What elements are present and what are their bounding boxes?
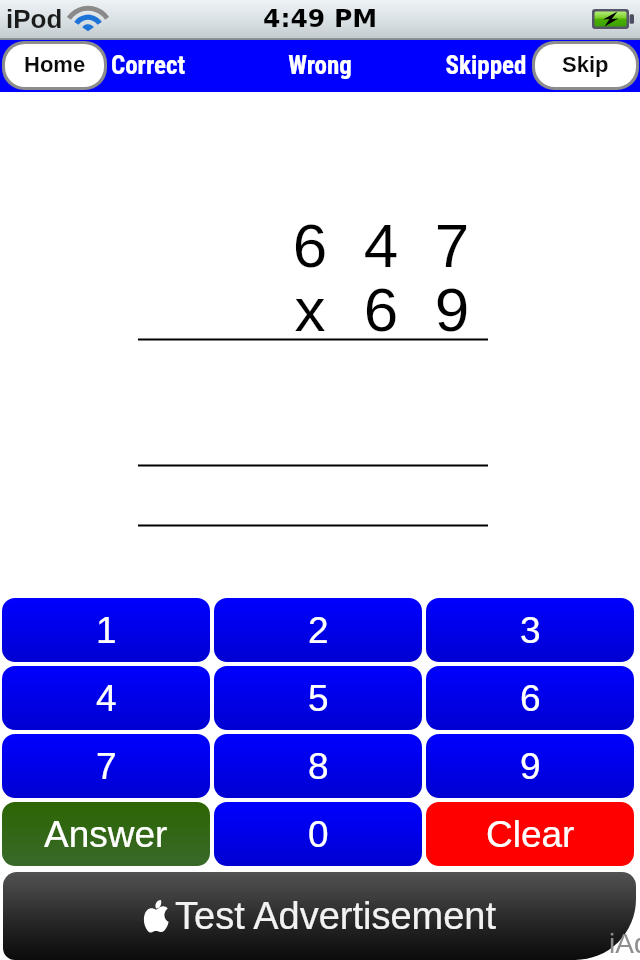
- button[interactable]: 6: [426, 666, 634, 730]
- staticText: 6: [520, 678, 541, 719]
- button[interactable]: 8: [214, 734, 422, 798]
- button[interactable]: 3: [426, 598, 634, 662]
- button[interactable]: Home: [5, 44, 104, 87]
- staticText: 7: [96, 746, 117, 787]
- staticText: 1: [96, 610, 117, 651]
- staticText: 4: [351, 211, 411, 280]
- staticText: Answer: [44, 814, 168, 855]
- staticText: 2: [308, 610, 329, 651]
- staticText: 4:49 PM: [263, 4, 378, 33]
- staticText: iPod: [6, 4, 63, 33]
- staticText: 6: [351, 275, 411, 344]
- button[interactable]: Test Advertisement: [3, 872, 636, 960]
- staticText: 0: [308, 814, 329, 855]
- staticText: Skip: [562, 52, 609, 77]
- staticText: 4: [96, 678, 117, 719]
- staticText: Skipped: [416, 51, 556, 80]
- button[interactable]: Clear: [426, 802, 634, 866]
- staticText: Test Advertisement: [175, 895, 497, 937]
- button[interactable]: 4: [2, 666, 210, 730]
- staticText: 3: [520, 610, 541, 651]
- staticText: Clear: [486, 814, 575, 855]
- staticText: 9: [520, 746, 541, 787]
- staticText: 6: [280, 211, 340, 280]
- button[interactable]: 0: [214, 802, 422, 866]
- staticText: 7: [422, 211, 482, 280]
- staticText: Correct: [78, 51, 218, 80]
- staticText: 8: [308, 746, 329, 787]
- staticText: 9: [422, 275, 482, 344]
- staticText: x: [280, 275, 340, 344]
- button[interactable]: 9: [426, 734, 634, 798]
- staticText: 5: [308, 678, 329, 719]
- button[interactable]: 7: [2, 734, 210, 798]
- staticText: Home: [24, 52, 86, 77]
- button[interactable]: 1: [2, 598, 210, 662]
- button[interactable]: 5: [214, 666, 422, 730]
- button[interactable]: 2: [214, 598, 422, 662]
- button[interactable]: Answer: [2, 802, 210, 866]
- staticText: Wrong: [250, 51, 390, 80]
- staticText: iAd: [609, 928, 640, 959]
- button[interactable]: Skip: [535, 44, 636, 87]
